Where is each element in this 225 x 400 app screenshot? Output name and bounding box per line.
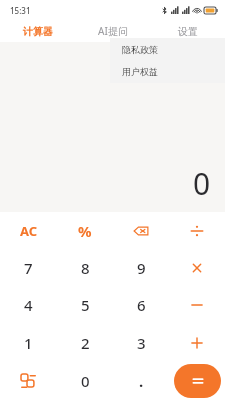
button[interactable]: 5 [57, 286, 113, 324]
button[interactable]: Equals [174, 364, 221, 398]
staticText: 4 [24, 295, 33, 315]
staticText: . [139, 371, 144, 391]
staticText: 6 [137, 295, 146, 315]
button[interactable]: Backspace [113, 212, 169, 249]
button[interactable]: 8 [57, 249, 113, 286]
button[interactable]: . [113, 362, 169, 400]
staticText: 7 [24, 258, 33, 278]
staticText: 隐私政策 [122, 44, 158, 55]
staticText: 0 [193, 163, 211, 204]
button[interactable]: Minus [169, 286, 225, 324]
button[interactable]: Divide [169, 212, 225, 249]
staticText: 3 [137, 333, 146, 353]
button[interactable]: AC [0, 212, 57, 249]
staticText: AI提问 [98, 24, 128, 38]
staticText: 9 [137, 258, 146, 278]
button[interactable]: Multiply [169, 249, 225, 286]
button[interactable]: 3 [113, 324, 169, 362]
button[interactable]: 设置 [150, 20, 225, 42]
staticText: 计算器 [23, 25, 53, 38]
button[interactable]: Plus [169, 324, 225, 362]
staticText: 1 [24, 333, 33, 353]
button[interactable]: 1 [0, 324, 57, 362]
staticText: 5 [81, 295, 90, 315]
button[interactable]: 6 [113, 286, 169, 324]
staticText: AC [20, 222, 38, 240]
staticText: 设置 [178, 25, 198, 38]
button[interactable]: 4 [0, 286, 57, 324]
staticText: 2 [81, 333, 90, 353]
button[interactable]: % [57, 212, 113, 249]
staticText: 15:31 [10, 5, 31, 16]
staticText: 8 [81, 258, 90, 278]
button[interactable]: 计算器 [0, 20, 75, 42]
button[interactable]: 0 [57, 362, 113, 400]
staticText: 用户权益 [122, 66, 158, 77]
staticText: 0 [81, 371, 90, 391]
button[interactable]: AI提问 [75, 20, 150, 42]
button[interactable]: 隐私政策 [110, 38, 225, 60]
button[interactable]: Unit conversion [0, 362, 57, 400]
button[interactable]: 7 [0, 249, 57, 286]
staticText: % [78, 221, 92, 241]
button[interactable]: 2 [57, 324, 113, 362]
button[interactable]: 9 [113, 249, 169, 286]
button[interactable]: 用户权益 [110, 60, 225, 82]
